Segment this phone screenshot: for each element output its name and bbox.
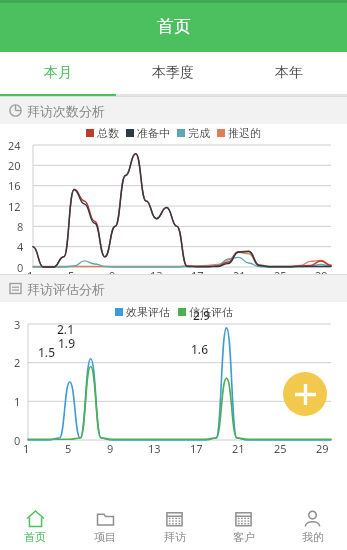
button[interactable]: 本月	[0, 52, 115, 94]
staticText: 首页	[24, 530, 46, 544]
staticText: 8	[17, 219, 24, 234]
staticText: 3	[14, 317, 21, 332]
staticText: 本年	[275, 64, 303, 82]
staticText: 5	[65, 441, 72, 456]
staticText: 25	[274, 441, 287, 456]
button[interactable]: 我的	[278, 503, 347, 550]
button[interactable]: Add	[283, 372, 327, 416]
staticText: 17	[191, 268, 204, 283]
staticText: 13	[148, 441, 161, 456]
staticText: 2.9	[193, 307, 210, 323]
staticText: 我的	[302, 530, 324, 544]
staticText: 项目	[94, 530, 116, 544]
button[interactable]: 客户	[209, 503, 278, 550]
staticText: 9	[107, 441, 114, 456]
staticText: 推迟的	[228, 126, 261, 140]
staticText: 24	[8, 138, 21, 153]
staticText: 21	[233, 268, 246, 283]
staticText: 17	[190, 441, 203, 456]
staticText: 效果评估	[126, 305, 170, 319]
staticText: 1	[14, 394, 21, 409]
staticText: 首页	[157, 16, 191, 37]
staticText: 0	[14, 433, 21, 448]
staticText: 拜访评估分析	[27, 281, 105, 297]
staticText: 12	[8, 199, 21, 214]
staticText: 信任评估	[189, 305, 233, 319]
button[interactable]: 本年	[231, 52, 347, 94]
staticText: 2	[14, 355, 21, 370]
staticText: 5	[68, 268, 75, 283]
staticText: 拜访次数分析	[27, 103, 105, 119]
staticText: 1	[27, 268, 34, 283]
staticText: 1.9	[58, 335, 75, 351]
staticText: 29	[315, 268, 328, 283]
staticText: 客户	[233, 530, 255, 544]
button[interactable]: 项目	[70, 503, 140, 550]
staticText: 20	[8, 158, 21, 173]
staticText: 1.5	[38, 344, 55, 360]
staticText: 总数	[97, 126, 119, 140]
staticText: 13	[150, 268, 163, 283]
staticText: 9	[109, 268, 116, 283]
staticText: 21	[232, 441, 245, 456]
staticText: 25	[274, 268, 287, 283]
button[interactable]: 首页	[0, 503, 70, 550]
staticText: 29	[316, 441, 329, 456]
staticText: 4	[17, 239, 24, 254]
staticText: 2.1	[57, 321, 74, 337]
staticText: 1	[23, 441, 30, 456]
staticText: 16	[8, 178, 21, 193]
staticText: 完成	[188, 126, 210, 140]
staticText: 本季度	[152, 64, 194, 82]
button[interactable]: 拜访	[140, 503, 209, 550]
staticText: 准备中	[137, 126, 170, 140]
staticText: 拜访	[164, 530, 186, 544]
staticText: 1.6	[191, 341, 208, 357]
button[interactable]: 本季度	[115, 52, 231, 94]
staticText: 0	[17, 260, 24, 275]
staticText: 本月	[44, 64, 72, 82]
